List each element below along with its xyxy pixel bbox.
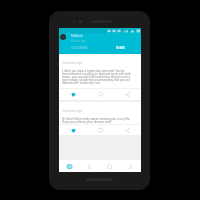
button[interactable]: Mildred	[59, 33, 141, 45]
button[interactable]: Like	[59, 125, 87, 135]
staticText: Mildred	[71, 34, 83, 38]
staticText: 6 hours ago	[71, 39, 86, 43]
staticText: SHARE	[116, 46, 125, 50]
button[interactable]: Explore	[99, 160, 120, 172]
button[interactable]: Camera	[59, 160, 79, 172]
staticText: I think you have a leadership potential.…	[62, 69, 137, 85]
button[interactable]: FOLLOWING	[59, 45, 100, 54]
staticText: 5 minutes ago	[62, 61, 83, 65]
staticText: 5 minutes ago	[62, 109, 83, 113]
button[interactable]: 5 minutes ago	[59, 102, 141, 135]
button[interactable]: SHARE	[100, 45, 141, 54]
button[interactable]: People	[79, 160, 99, 172]
button[interactable]: Share	[114, 125, 141, 135]
staticText: FOLLOWING	[71, 46, 88, 50]
button[interactable]: Share	[114, 89, 141, 100]
staticText: Hi there Helen really sweet meeting you …	[62, 117, 137, 124]
button[interactable]: 5 minutes ago	[59, 54, 141, 100]
button[interactable]: Comment	[87, 125, 114, 135]
button[interactable]: Comment	[87, 89, 114, 100]
button[interactable]: Profile	[120, 160, 141, 172]
button[interactable]: Like	[59, 89, 87, 100]
